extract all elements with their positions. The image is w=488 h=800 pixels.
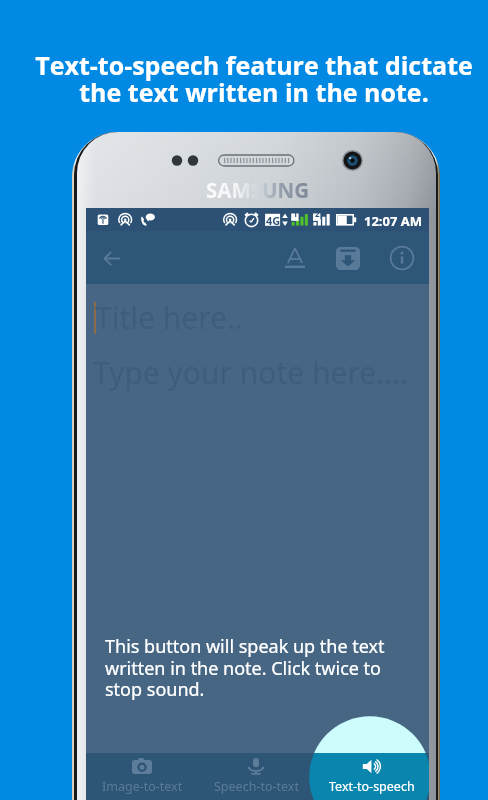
button[interactable]: Speech-to-text	[199, 753, 313, 800]
staticText: This button will speak up the text writt…	[105, 634, 395, 701]
button[interactable]: Image-to-text	[85, 753, 199, 800]
staticText: Title here..	[95, 297, 243, 338]
staticText: Image-to-text	[102, 778, 183, 795]
button[interactable]: Text format	[273, 236, 317, 280]
staticText: Text-to-speech feature that dictate the …	[10, 48, 488, 110]
button[interactable]: Text-to-speech	[315, 753, 429, 800]
staticText: 4G	[266, 213, 281, 228]
staticText: SAMSUNG	[206, 176, 310, 204]
button[interactable]: Info	[380, 236, 424, 280]
staticText: 2	[315, 208, 320, 219]
staticText: 12:07 AM	[364, 212, 423, 230]
staticText: Text-to-speech	[329, 778, 415, 795]
button[interactable]: Save note	[326, 236, 370, 280]
button[interactable]: Back	[90, 236, 134, 280]
staticText: Speech-to-text	[214, 778, 299, 795]
staticText: 1	[293, 208, 298, 219]
